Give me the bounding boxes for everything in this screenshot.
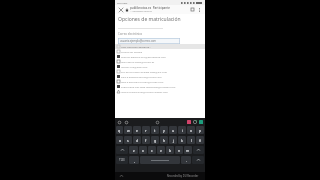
staticText: v [160, 148, 162, 153]
staticText: . [186, 158, 187, 163]
button[interactable]: Tabs [189, 6, 196, 13]
button[interactable]: y [160, 126, 168, 134]
button[interactable]: Fco.de.los.casas.alcaldia.sede@fco.com [117, 69, 205, 74]
button[interactable]: lucia.b.molina.kvm@correo.colegio.com [117, 89, 205, 94]
staticText: maria.t.ruiz@mail.com [121, 65, 183, 68]
staticText: publibnotas.es Participante [130, 6, 171, 10]
staticText: jose.ramon.lopez@correo.es [121, 60, 176, 63]
button[interactable]: q [116, 126, 123, 134]
button[interactable]: alumno.ejemplo.uno@estudiante.com [117, 54, 205, 59]
staticText: Correo electrónico [118, 32, 143, 36]
staticText: t [154, 128, 156, 133]
button[interactable]: n [175, 146, 183, 154]
staticText: m [186, 148, 190, 153]
staticText: , [134, 158, 135, 163]
button[interactable]: j [169, 136, 177, 144]
staticText: ?123 [119, 158, 125, 162]
staticText: sofia.maria.sub.sede.destacado@tcolegio.… [121, 85, 197, 88]
button[interactable]: s [124, 136, 132, 144]
button[interactable]: f [142, 136, 150, 144]
button[interactable]: maria.t.ruiz@mail.com [117, 64, 205, 69]
button[interactable]: o [187, 126, 195, 134]
button[interactable]: m [184, 146, 192, 154]
staticText: u [172, 128, 175, 133]
button[interactable]: x [139, 146, 147, 154]
staticText: d [136, 138, 139, 143]
button[interactable]: Backspace [193, 146, 204, 154]
button[interactable]: i [178, 126, 186, 134]
staticText: dani.a.diaz.pelo.correo@correo.com [121, 80, 181, 83]
staticText: k [181, 138, 183, 143]
staticText: b [169, 148, 172, 153]
staticText: g [154, 138, 157, 143]
button[interactable]: c [148, 146, 156, 154]
button[interactable]: Shift [116, 146, 128, 154]
button[interactable]: sofia.maria.sub.sede.destacado@tcolegio.… [117, 84, 205, 89]
staticText: Opciones de matriculación [118, 16, 181, 23]
button[interactable]: . [181, 156, 191, 164]
staticText: z [133, 148, 135, 153]
staticText: h [163, 138, 166, 143]
button[interactable]: Translate [199, 120, 203, 124]
staticText: x [142, 148, 144, 153]
button[interactable]: z [129, 146, 138, 154]
button[interactable]: u [169, 126, 177, 134]
staticText: l [191, 138, 192, 143]
staticText: Fco.de.los.casas.alcaldia.sede@fco.com [121, 70, 193, 73]
staticText: o [190, 128, 193, 133]
button[interactable]: v [157, 146, 165, 154]
button[interactable]: Numbers [116, 156, 128, 164]
button[interactable]: k [178, 136, 186, 144]
staticText: usuario.ejemplo@correo.com [120, 39, 156, 43]
button[interactable]: g [151, 136, 159, 144]
staticText: p [199, 128, 202, 133]
button[interactable]: l [187, 136, 195, 144]
staticText: Cuenta de Google [121, 50, 180, 53]
button[interactable]: Back [119, 174, 124, 179]
button[interactable]: dani.a.diaz.pelo.correo@correo.com [117, 79, 205, 84]
staticText: sara.a.aguilera.torres@correo.com [121, 75, 190, 78]
button[interactable]: ñ [196, 136, 204, 144]
button[interactable]: More options [196, 6, 203, 13]
staticText: f [145, 138, 147, 143]
staticText: s [127, 138, 129, 143]
button[interactable]: , [129, 156, 139, 164]
staticText: r [145, 128, 147, 133]
button[interactable]: Clipboard [117, 120, 121, 124]
staticText: Recorded by DU Recorder [167, 174, 199, 178]
button[interactable]: usuario.ejemplo@correo.com [118, 38, 180, 44]
staticText: e [136, 128, 138, 133]
button[interactable]: t [151, 126, 159, 134]
staticText: n [178, 148, 181, 153]
staticText: Usar dirección diferente... [121, 45, 173, 48]
staticText: y [163, 128, 165, 133]
button[interactable]: Search [124, 120, 128, 124]
staticText: .../candidato-guia.es [130, 10, 152, 13]
staticText: ñ [199, 138, 202, 143]
button[interactable]: r [142, 126, 150, 134]
button[interactable]: GIF [193, 120, 197, 124]
button[interactable]: e [133, 126, 141, 134]
button[interactable]: p [196, 126, 204, 134]
staticText: q [118, 128, 121, 133]
button[interactable]: sara.a.aguilera.torres@correo.com [117, 74, 205, 79]
button[interactable]: Usar dirección diferente... [117, 44, 205, 49]
staticText: j [173, 138, 174, 143]
staticText: Recorder [117, 1, 128, 4]
button[interactable]: jose.ramon.lopez@correo.es [117, 59, 205, 64]
button[interactable]: Space [140, 156, 180, 164]
staticText: c [151, 148, 153, 153]
button[interactable]: h [160, 136, 168, 144]
button[interactable]: Voice input [155, 120, 159, 124]
button[interactable]: b [166, 146, 174, 154]
staticText: w [127, 128, 130, 133]
button[interactable]: a [116, 136, 123, 144]
button[interactable]: Enter [192, 156, 204, 164]
button[interactable]: d [133, 136, 141, 144]
button[interactable]: Cuenta de Google [117, 49, 205, 54]
button[interactable]: w [124, 126, 132, 134]
button[interactable]: Stickers [187, 120, 191, 124]
staticText: alumno.ejemplo.uno@estudiante.com [121, 55, 188, 58]
button[interactable]: Close tab [117, 6, 124, 13]
staticText: i [182, 128, 183, 133]
